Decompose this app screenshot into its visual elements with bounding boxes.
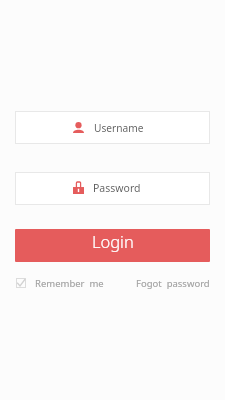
other: Remember me [16,278,26,288]
staticText: Remember me [35,277,104,290]
button[interactable]: Remember me [16,276,104,290]
other: Password [73,182,84,194]
staticText: Login [92,230,134,252]
button[interactable]: Login [15,229,210,262]
staticText: Username [94,121,144,135]
other: User [73,122,84,133]
button[interactable]: Fogot password [136,276,210,290]
button[interactable]: Password [15,172,210,205]
staticText: Fogot password [136,277,210,290]
button[interactable]: User [15,111,210,144]
staticText: Password [93,181,141,195]
